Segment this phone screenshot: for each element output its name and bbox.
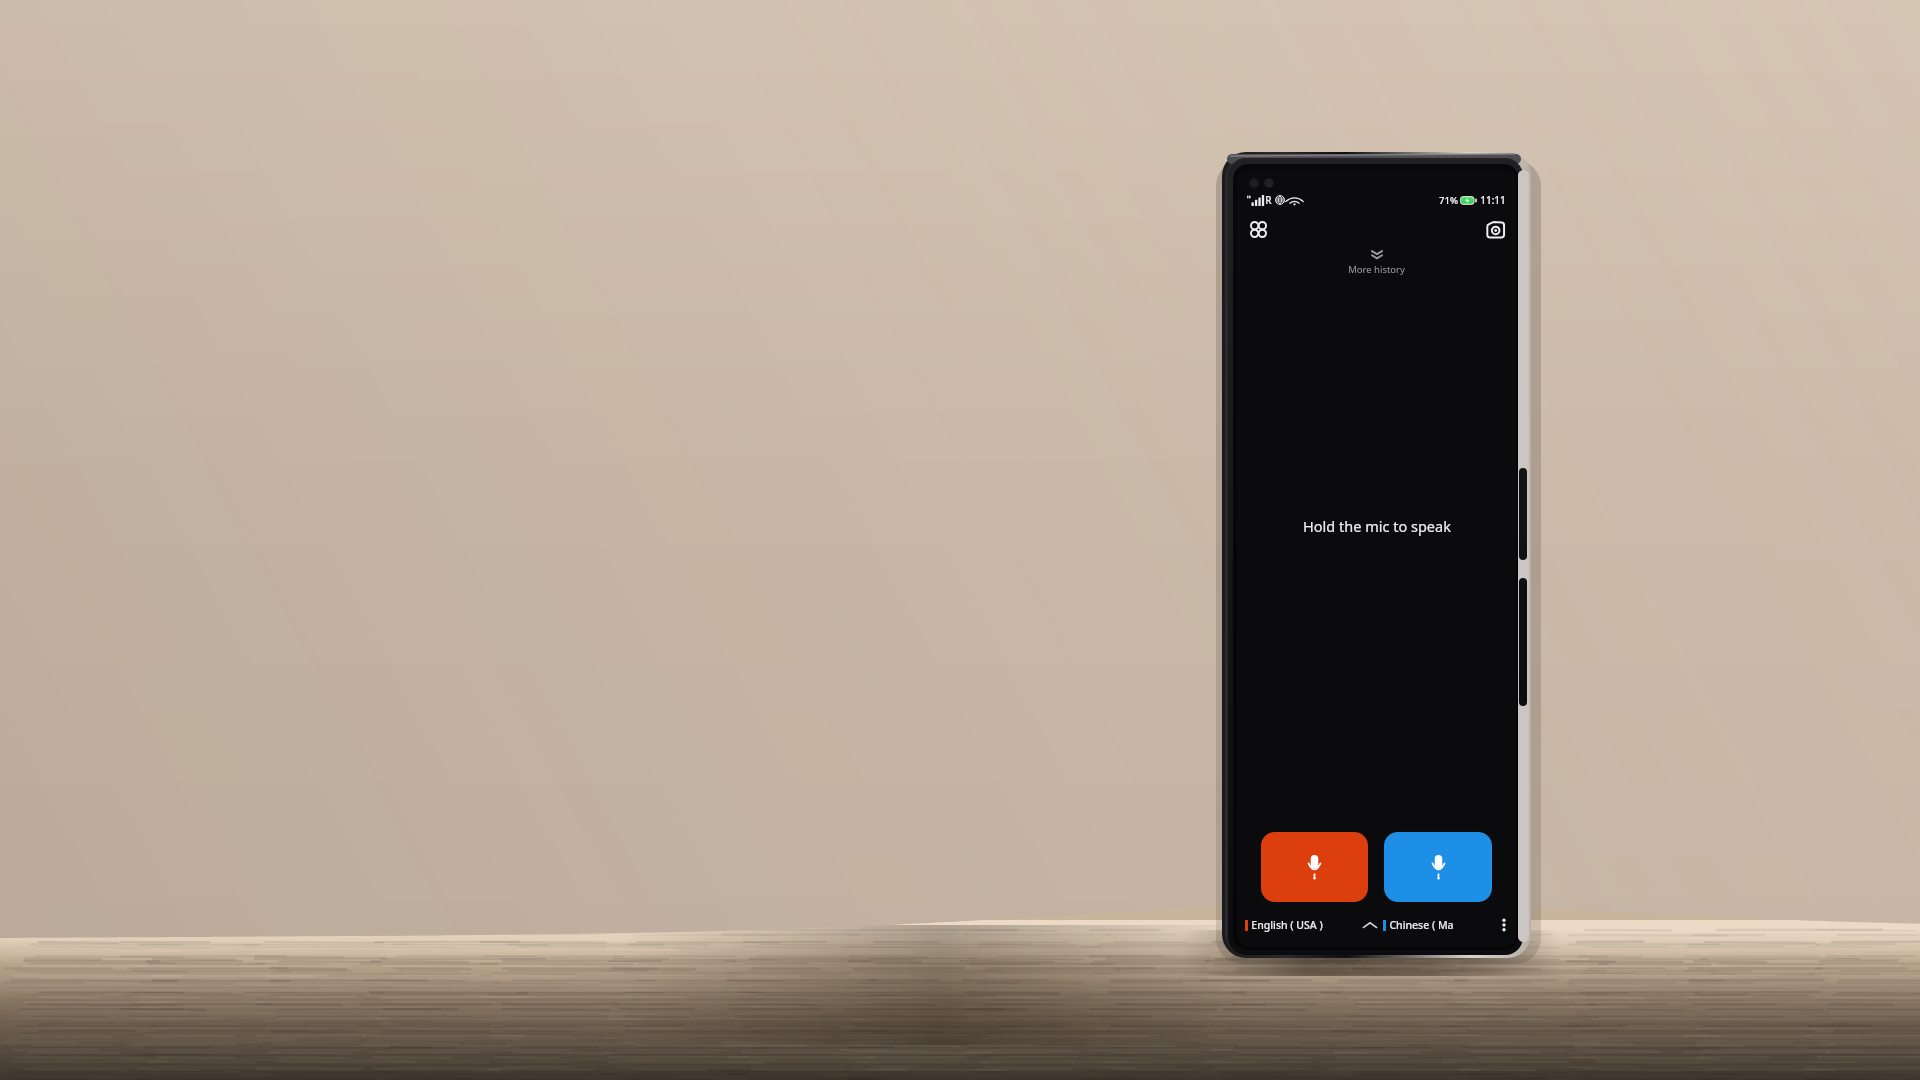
button[interactable]: Speak Chinese — [1384, 832, 1492, 902]
staticText: Hold the mic to speak — [1303, 516, 1451, 536]
button[interactable]: Camera translate — [1480, 214, 1510, 244]
staticText: R — [1265, 193, 1272, 207]
staticText: English ( USA ) — [1251, 918, 1323, 932]
button[interactable]: Collapse — [1357, 915, 1383, 935]
button[interactable]: Speak English — [1261, 832, 1368, 902]
button[interactable]: More options — [1498, 915, 1510, 935]
button[interactable]: English ( USA ) — [1243, 918, 1357, 932]
staticText: 11:11 — [1480, 193, 1506, 207]
staticText: 71% — [1439, 194, 1458, 207]
button[interactable]: More history — [1237, 250, 1516, 276]
button[interactable]: Chinese ( Ma — [1383, 918, 1498, 932]
staticText: More history — [1348, 263, 1405, 276]
staticText: Chinese ( Ma — [1389, 918, 1454, 932]
button[interactable]: Apps — [1243, 214, 1273, 244]
